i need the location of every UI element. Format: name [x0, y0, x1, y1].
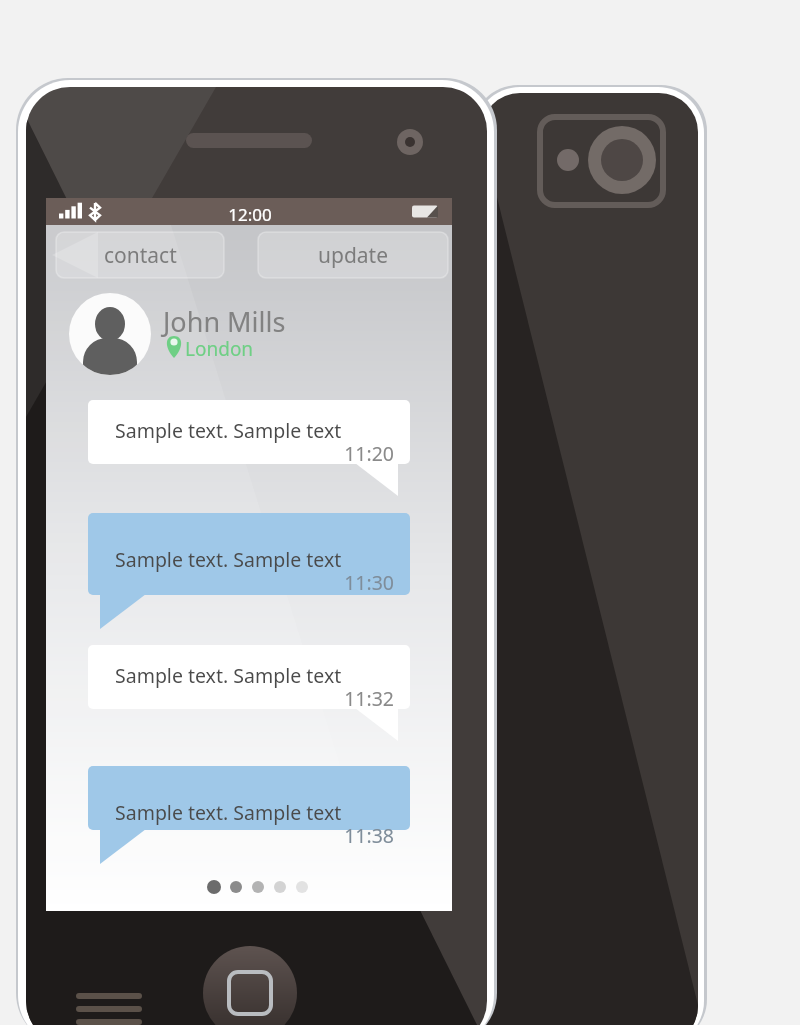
- staticText: London: [185, 336, 254, 362]
- button[interactable]: Message at 11:30: [88, 513, 410, 595]
- staticText: update: [318, 241, 389, 270]
- button[interactable]: Message at 11:20: [88, 400, 410, 464]
- staticText: contact: [104, 241, 177, 270]
- staticText: John Mills: [163, 303, 286, 340]
- staticText: Sample text. Sample text: [115, 546, 342, 573]
- button[interactable]: Message at 11:32: [88, 645, 410, 709]
- staticText: 11:32: [344, 685, 394, 712]
- staticText: Sample text. Sample text: [115, 799, 342, 826]
- button[interactable]: Message at 11:38: [88, 766, 410, 830]
- staticText: Sample text. Sample text: [115, 417, 342, 444]
- staticText: 11:20: [344, 440, 394, 467]
- staticText: 12:00: [228, 203, 272, 226]
- staticText: 11:30: [344, 569, 394, 596]
- button[interactable]: Page indicator: [200, 872, 300, 902]
- button[interactable]: John Mills, London: [66, 290, 366, 378]
- button[interactable]: contact: [56, 232, 224, 278]
- staticText: Sample text. Sample text: [115, 662, 342, 689]
- button[interactable]: update: [258, 232, 448, 278]
- staticText: 11:38: [344, 822, 394, 849]
